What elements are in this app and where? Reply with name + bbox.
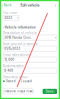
staticText: ▾ [55,36,56,39]
staticText: 8,400 [4,69,13,72]
staticText: 01/15/2023 [4,47,20,50]
staticText: Total miles driven [3,53,30,57]
staticText: Ownership status [3,75,27,79]
staticText: Back [4,3,12,7]
staticText: Leased [21,79,32,83]
staticText: ▾ [17,16,18,19]
button[interactable]: Owned [3,79,16,83]
staticText: ‹ [1,3,3,8]
staticText: Vehicle no longer in use [4,90,32,93]
button[interactable]: Leased [18,79,32,83]
staticText: ⋮ [54,3,58,7]
staticText: 2018 Honda Civic [4,36,31,39]
button[interactable]: ‹ [0,2,13,8]
button[interactable]: Vehicle no longer in use [3,89,33,94]
staticText: Business miles [3,64,23,68]
staticText: Vehicle information [5,26,36,29]
button[interactable]: Save [43,89,57,94]
staticText: 2023 [4,16,12,20]
staticText: Save [46,90,54,93]
staticText: Owned [6,79,16,83]
staticText: Tax year [3,11,17,15]
staticText: ▾ [3,26,4,29]
staticText: Description of vehicle [3,31,37,35]
staticText: 12,000 [4,58,14,61]
staticText: Date placed in service [3,42,38,46]
staticText: Edit vehicle [20,3,39,7]
button[interactable]: More options [51,2,60,8]
